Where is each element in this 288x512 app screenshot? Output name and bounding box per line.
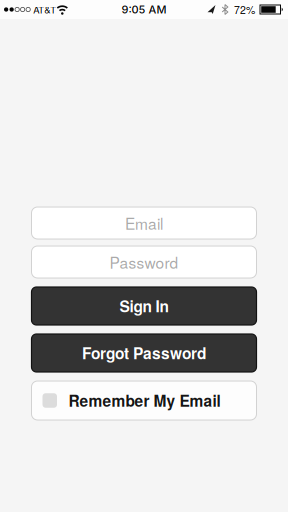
staticText: Sign In bbox=[119, 295, 168, 317]
staticText: 9:05 AM bbox=[121, 3, 166, 16]
staticText: AT&T bbox=[33, 3, 56, 16]
staticText: Email bbox=[125, 212, 163, 234]
button[interactable]: Password bbox=[31, 246, 256, 278]
staticText: Password bbox=[109, 251, 178, 273]
button[interactable]: Email bbox=[31, 207, 256, 239]
staticText: Forgot Password bbox=[82, 342, 206, 364]
button[interactable]: Forgot Password bbox=[31, 334, 256, 372]
staticText: 72% bbox=[234, 2, 255, 17]
staticText: Remember My Email bbox=[68, 389, 220, 412]
button[interactable]: Sign In bbox=[31, 287, 256, 325]
button[interactable]: Remember My Email bbox=[31, 381, 256, 420]
